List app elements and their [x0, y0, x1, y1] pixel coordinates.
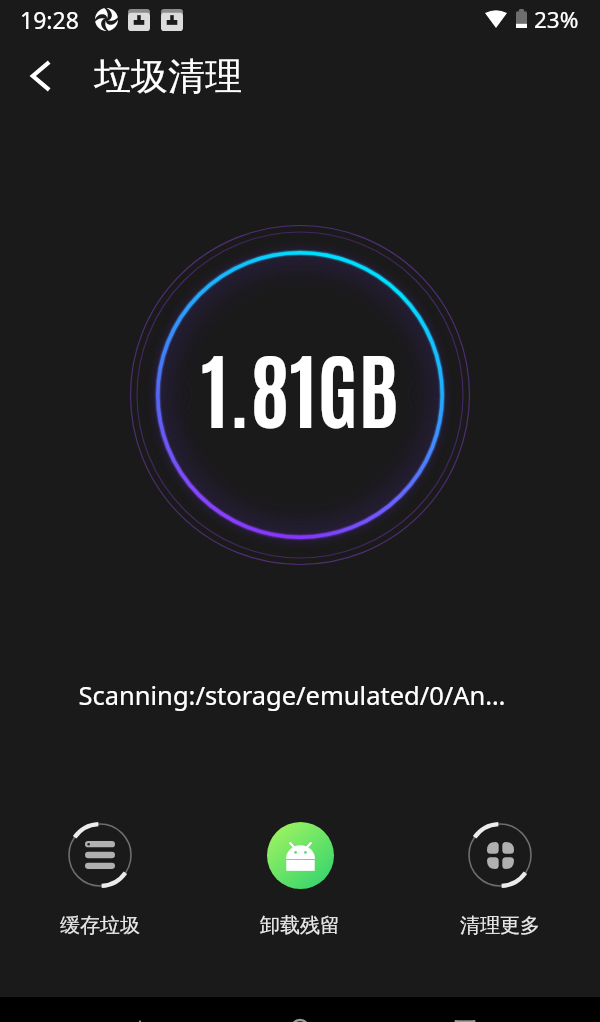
staticText: Scanning:/storage/emulated/0/An… [0, 678, 584, 713]
button[interactable]: Back [19, 55, 61, 97]
button[interactable]: Home [250, 997, 350, 1022]
staticText: 清理更多 [460, 913, 540, 938]
button[interactable]: 卸载残留 [200, 821, 400, 938]
staticText: 缓存垃圾 [60, 913, 140, 938]
staticText: 1.81GB [201, 331, 399, 440]
button[interactable]: 缓存垃圾 [0, 821, 200, 938]
button[interactable]: Back [90, 997, 190, 1022]
button[interactable]: 清理更多 [400, 821, 600, 938]
staticText: 卸载残留 [260, 913, 340, 938]
staticText: 23% [534, 4, 579, 35]
staticText: 19:28 [20, 4, 79, 35]
staticText: 垃圾清理 [94, 53, 242, 100]
button[interactable]: Recents [415, 997, 515, 1022]
